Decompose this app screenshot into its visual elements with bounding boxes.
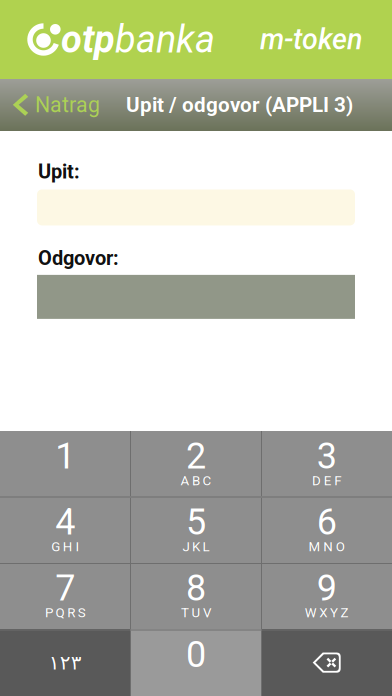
staticText: GHI	[51, 539, 79, 555]
staticText: WXYZ	[305, 605, 349, 621]
staticText: ABC	[180, 473, 212, 489]
staticText: DEF	[312, 473, 341, 489]
staticText: 0	[186, 633, 206, 676]
staticText: 4	[55, 501, 75, 543]
staticText: 8	[186, 567, 206, 609]
staticText: PQRS	[45, 605, 86, 621]
button[interactable]: 4	[0, 497, 131, 563]
staticText: 5	[186, 501, 206, 543]
button[interactable]: 5	[131, 497, 261, 563]
button[interactable]: Delete	[261, 629, 392, 696]
staticText: JKL	[182, 539, 210, 555]
button[interactable]: 6	[261, 497, 392, 563]
staticText: Natrag	[35, 92, 100, 117]
button[interactable]: 1	[0, 431, 131, 497]
staticText: TUV	[181, 605, 211, 621]
staticText: banka	[115, 17, 215, 62]
staticText: 2	[186, 435, 206, 477]
staticText: 9	[317, 567, 337, 609]
staticText: 3	[317, 435, 337, 477]
button[interactable]: 7	[0, 563, 131, 629]
staticText: 1	[55, 435, 75, 477]
staticText: ١٢٣	[49, 651, 82, 674]
button[interactable]: 2	[131, 431, 261, 497]
button[interactable]: 9	[261, 563, 392, 629]
button[interactable]: 8	[131, 563, 261, 629]
button[interactable]: 3	[261, 431, 392, 497]
staticText: Upit / odgovor (APPLI 3)	[126, 93, 353, 117]
button[interactable]: 0	[131, 629, 261, 696]
button[interactable]: Switch to Arabic numerals	[0, 629, 131, 696]
staticText: 6	[317, 501, 337, 543]
staticText: Upit:	[38, 160, 80, 183]
staticText: m-token	[260, 23, 362, 56]
button[interactable]: Natrag	[0, 79, 110, 131]
staticText: 7	[55, 567, 75, 609]
staticText: otp	[61, 17, 115, 62]
staticText: MNO	[309, 539, 345, 555]
staticText: Odgovor:	[38, 246, 119, 270]
